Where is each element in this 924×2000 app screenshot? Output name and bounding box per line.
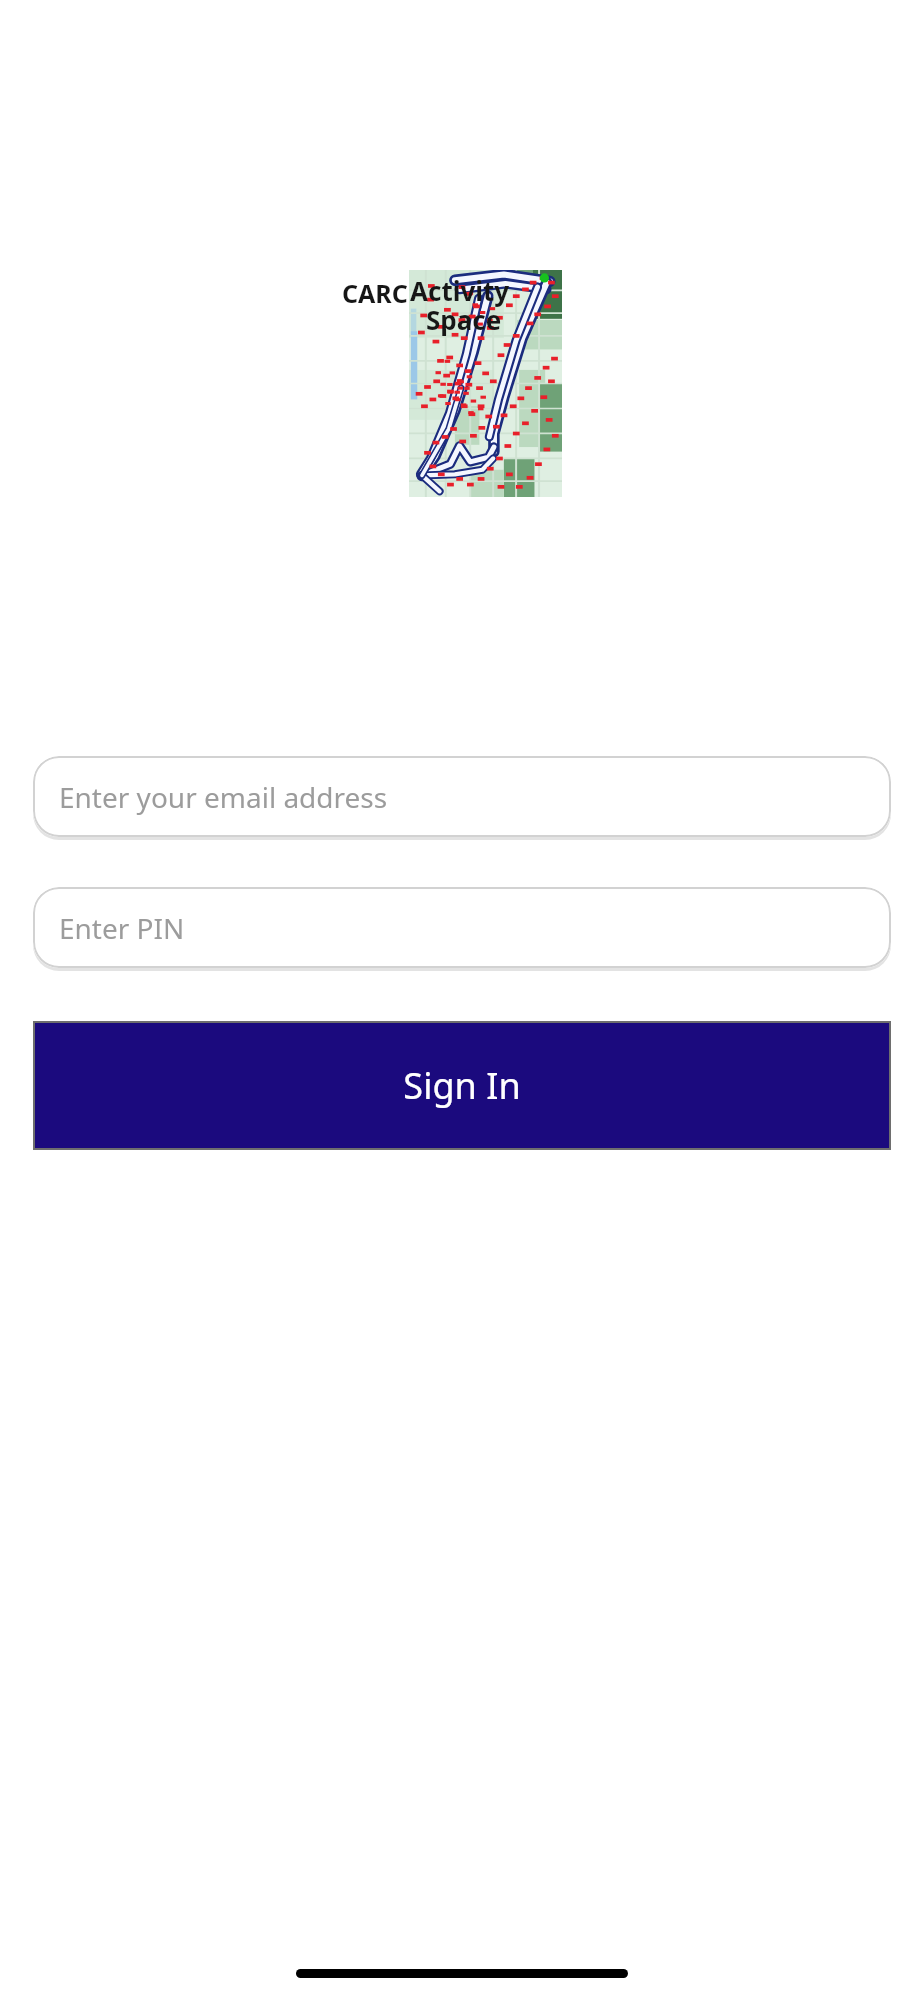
staticText: Space	[426, 302, 502, 337]
staticText: CARC	[342, 276, 408, 310]
staticText: Enter PIN	[59, 909, 185, 947]
staticText: Sign In	[403, 1061, 521, 1110]
button[interactable]: Enter PIN	[33, 887, 891, 968]
staticText: Enter your email address	[59, 778, 388, 816]
button[interactable]: Sign In	[35, 1023, 889, 1148]
staticText: Activity	[410, 273, 510, 308]
button[interactable]: Enter your email address	[33, 756, 891, 837]
